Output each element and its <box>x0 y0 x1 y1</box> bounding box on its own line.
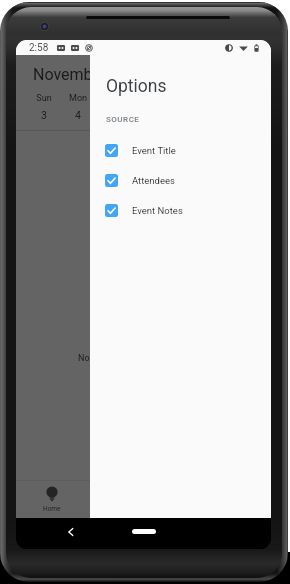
staticText: No events scheduled for this day <box>78 353 209 364</box>
staticText: Event Notes <box>132 205 183 216</box>
staticText: Sun <box>27 93 61 104</box>
button[interactable]: Options <box>90 55 271 518</box>
staticText: 3 <box>27 109 61 121</box>
staticText: Tue <box>95 93 128 104</box>
staticText: 2:58 <box>29 42 49 54</box>
button[interactable]: Home <box>132 529 156 534</box>
staticText: SOURCE <box>106 115 140 124</box>
button[interactable]: Back <box>62 523 80 541</box>
staticText: Options <box>106 76 167 97</box>
staticText: 5 <box>95 109 128 121</box>
staticText: Mon <box>61 93 95 104</box>
staticText: November 2019 <box>33 65 147 84</box>
button[interactable]: Event Notes <box>90 195 271 225</box>
staticText: Event Title <box>132 145 176 156</box>
staticText: Home <box>43 505 61 513</box>
staticText: 6 <box>128 109 161 121</box>
button[interactable]: Event Title <box>90 135 271 165</box>
button[interactable]: Home <box>21 481 83 518</box>
button[interactable]: Search <box>83 481 144 518</box>
button[interactable]: Attendees <box>90 165 271 195</box>
staticText: Attendees <box>132 175 175 186</box>
staticText: 4 <box>61 109 95 121</box>
